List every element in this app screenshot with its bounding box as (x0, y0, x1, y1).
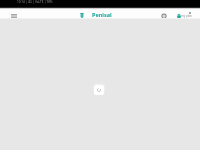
button[interactable]: Penisal (80, 11, 112, 18)
button[interactable]: Scan card (159, 11, 169, 19)
staticText: Penisal (92, 11, 112, 18)
staticText: 10:14 | 4G | VoLTE | 78% (17, 0, 53, 4)
button[interactable]: Menu (8, 10, 20, 18)
button[interactable]: my plan (177, 12, 192, 18)
staticText: my plan (181, 14, 192, 18)
